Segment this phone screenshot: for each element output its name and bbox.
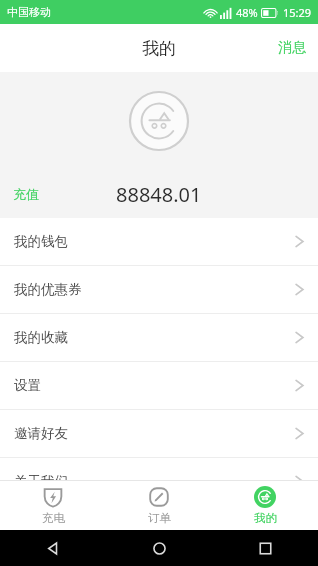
staticText: 我的: [142, 38, 176, 59]
staticText: 充值: [13, 186, 39, 202]
button[interactable]: 设置: [0, 362, 318, 409]
staticText: 我的优惠券: [14, 281, 82, 298]
staticText: 48%: [236, 5, 258, 20]
staticText: 中国移动: [7, 5, 51, 19]
button[interactable]: 订单: [106, 481, 212, 530]
button[interactable]: 我的优惠券: [0, 266, 318, 313]
staticText: 关于我们: [14, 473, 68, 490]
staticText: 邀请好友: [14, 425, 68, 442]
staticText: 88848.01: [116, 181, 202, 208]
staticText: 消息: [278, 39, 306, 57]
staticText: 15:29: [283, 5, 312, 20]
staticText: 我的: [254, 511, 277, 525]
staticText: 我的收藏: [14, 329, 68, 346]
button[interactable]: Home: [106, 530, 212, 566]
staticText: 我的钱包: [14, 233, 68, 250]
button[interactable]: 充值: [0, 170, 52, 218]
staticText: 订单: [148, 511, 171, 525]
button[interactable]: 我的: [212, 481, 318, 530]
button[interactable]: 我的钱包: [0, 218, 318, 265]
button[interactable]: 充电: [0, 481, 106, 530]
button[interactable]: 我的收藏: [0, 314, 318, 361]
button[interactable]: Recent apps: [212, 530, 318, 566]
staticText: 充电: [42, 511, 65, 525]
button[interactable]: 邀请好友: [0, 410, 318, 457]
button[interactable]: 关于我们: [0, 458, 318, 505]
staticText: 设置: [14, 377, 41, 394]
button[interactable]: Profile avatar: [128, 90, 190, 152]
button[interactable]: 消息: [266, 24, 318, 72]
button[interactable]: Back: [0, 530, 106, 566]
